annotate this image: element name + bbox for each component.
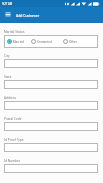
staticText: Address	[4, 96, 16, 100]
button[interactable]	[4, 122, 98, 131]
staticText: Married	[13, 40, 24, 44]
staticText: 9:27 AM	[2, 2, 13, 6]
staticText: Other	[69, 40, 77, 44]
button[interactable]: Open navigation menu	[4, 10, 13, 19]
button[interactable]	[4, 59, 98, 68]
staticText: Marital Status	[4, 30, 25, 34]
staticText: Unmarried	[37, 40, 52, 44]
button[interactable]: Married	[7, 39, 24, 44]
button[interactable]: Other	[63, 39, 77, 44]
button[interactable]	[4, 143, 98, 152]
staticText: Add Customer	[16, 13, 40, 18]
staticText: Postal Code	[4, 117, 22, 121]
button[interactable]	[4, 164, 98, 173]
staticText: Id Proof Type	[4, 138, 24, 142]
button[interactable]: Unmarried	[31, 39, 52, 44]
button[interactable]	[4, 101, 98, 110]
button[interactable]	[4, 80, 98, 89]
staticText: City	[4, 54, 10, 58]
staticText: State	[4, 75, 12, 79]
staticText: Id Number	[4, 159, 21, 163]
